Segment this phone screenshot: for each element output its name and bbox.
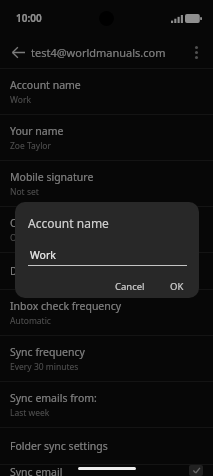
button[interactable]: Sync emails from:	[0, 382, 213, 427]
staticText: Work	[10, 94, 31, 106]
button[interactable]: Sync email	[0, 465, 213, 476]
button[interactable]: Sync frequency	[0, 336, 213, 381]
button[interactable]: Inbox check frequency	[0, 290, 213, 335]
staticText: Work	[30, 248, 56, 262]
button[interactable]: Folder sync settings	[0, 428, 213, 464]
staticText: Zoe Taylor	[10, 140, 52, 152]
button[interactable]: Toggle Sync email	[189, 465, 203, 476]
staticText: Account name	[10, 78, 81, 92]
staticText: Account name	[28, 215, 109, 231]
staticText: Every 30 minutes	[10, 361, 79, 373]
button[interactable]: More options	[183, 39, 209, 65]
button[interactable]: Default account	[0, 253, 213, 289]
staticText: Your name	[10, 124, 64, 138]
staticText: 10:00	[16, 11, 42, 25]
button[interactable]: Mobile signature	[0, 161, 213, 206]
staticText: Not set	[10, 186, 39, 198]
staticText: Out of Office Auto Reply	[10, 216, 129, 230]
staticText: Off	[10, 232, 23, 244]
button[interactable]: Cancel	[109, 277, 151, 296]
staticText: Default account	[10, 264, 88, 278]
button[interactable]: Account name	[0, 69, 213, 114]
button[interactable]: OK	[164, 277, 190, 296]
staticText: Automatic	[10, 315, 51, 327]
staticText: test4@worldmanuals.com	[31, 45, 166, 60]
button[interactable]: Out of Office Auto Reply	[0, 207, 213, 252]
button[interactable]: Back	[5, 39, 31, 65]
staticText: Sync frequency	[10, 345, 85, 359]
staticText: Folder sync settings	[10, 439, 108, 453]
staticText: Mobile signature	[10, 170, 94, 184]
staticText: Sync emails from:	[10, 391, 97, 405]
staticText: Sync email	[10, 465, 63, 476]
staticText: Inbox check frequency	[10, 299, 122, 313]
staticText: Last week	[10, 407, 50, 419]
button[interactable]: Your name	[0, 115, 213, 160]
